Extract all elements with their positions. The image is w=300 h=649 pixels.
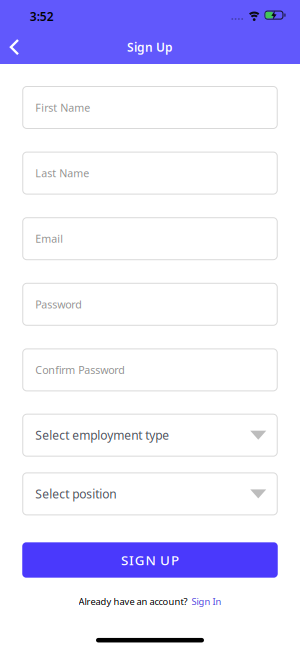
button[interactable]: Last Name xyxy=(22,152,278,195)
staticText: Select position xyxy=(35,486,116,502)
staticText: SIGN UP xyxy=(121,551,179,569)
staticText: Select employment type xyxy=(35,427,169,443)
staticText: 3:52 xyxy=(30,8,54,24)
staticText: Last Name xyxy=(35,166,89,180)
staticText: Confirm Password xyxy=(35,363,125,377)
staticText: Already have an account? xyxy=(78,595,187,608)
button[interactable]: Sign In xyxy=(191,595,221,608)
staticText: First Name xyxy=(35,100,90,115)
staticText: Sign Up xyxy=(127,39,173,55)
button[interactable]: Select employment type xyxy=(22,414,278,457)
button[interactable]: Email xyxy=(22,217,278,260)
staticText: Password xyxy=(35,297,82,311)
staticText: Sign In xyxy=(191,595,221,608)
staticText: Email xyxy=(35,232,63,246)
button[interactable]: SIGN UP xyxy=(22,542,278,578)
button[interactable]: Confirm Password xyxy=(22,348,278,391)
button[interactable]: Back xyxy=(6,37,22,57)
button[interactable]: First Name xyxy=(22,86,278,129)
button[interactable]: Select position xyxy=(22,472,278,515)
button[interactable]: Password xyxy=(22,283,278,326)
